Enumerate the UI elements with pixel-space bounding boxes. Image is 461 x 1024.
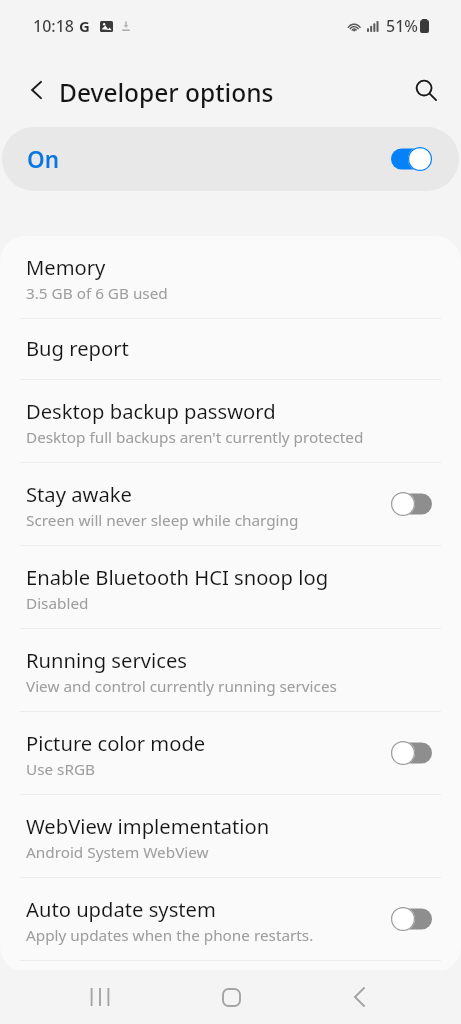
button[interactable]: Navigate up [17, 70, 57, 110]
button[interactable] [0, 960, 461, 972]
staticText: 3.5 GB of 6 GB used [26, 283, 168, 304]
staticText: Stay awake [26, 480, 132, 508]
staticText: Running services [26, 646, 187, 674]
staticText: Desktop full backups aren't currently pr… [26, 427, 364, 448]
staticText: Enable Bluetooth HCI snoop log [26, 563, 329, 591]
button[interactable]: Enable Bluetooth HCI snoop log [0, 546, 461, 628]
staticText: Use sRGB [26, 759, 96, 780]
button[interactable]: Search [403, 67, 449, 113]
button[interactable]: Auto update system [0, 878, 461, 960]
staticText: View and control currently running servi… [26, 676, 337, 697]
button[interactable]: Running services [0, 629, 461, 711]
staticText: WebView implementation [26, 812, 270, 840]
staticText: Disabled [26, 593, 89, 614]
button[interactable]: Back [329, 970, 389, 1024]
staticText: Picture color mode [26, 729, 206, 757]
button[interactable]: Home [201, 970, 261, 1024]
button[interactable]: WebView implementation [0, 795, 461, 877]
staticText: Bug report [26, 334, 129, 362]
button[interactable]: Bug report [0, 319, 461, 379]
staticText: G [79, 16, 90, 36]
button[interactable]: Picture color mode [0, 712, 461, 794]
staticText: On [27, 144, 60, 175]
button[interactable]: Recent apps [70, 970, 130, 1024]
staticText: Apply updates when the phone restarts. [26, 925, 314, 946]
button[interactable]: Memory [0, 236, 461, 318]
staticText: Android System WebView [26, 842, 209, 863]
staticText: Developer options [59, 76, 274, 109]
staticText: 51% [386, 15, 418, 37]
button[interactable]: Desktop backup password [0, 380, 461, 462]
staticText: Auto update system [26, 895, 216, 923]
staticText: 10:18 [33, 15, 74, 37]
staticText: Desktop backup password [26, 397, 276, 425]
button[interactable]: On [2, 127, 459, 191]
staticText: Memory [26, 253, 106, 281]
staticText: Screen will never sleep while charging [26, 510, 299, 531]
button[interactable]: Stay awake [0, 463, 461, 545]
